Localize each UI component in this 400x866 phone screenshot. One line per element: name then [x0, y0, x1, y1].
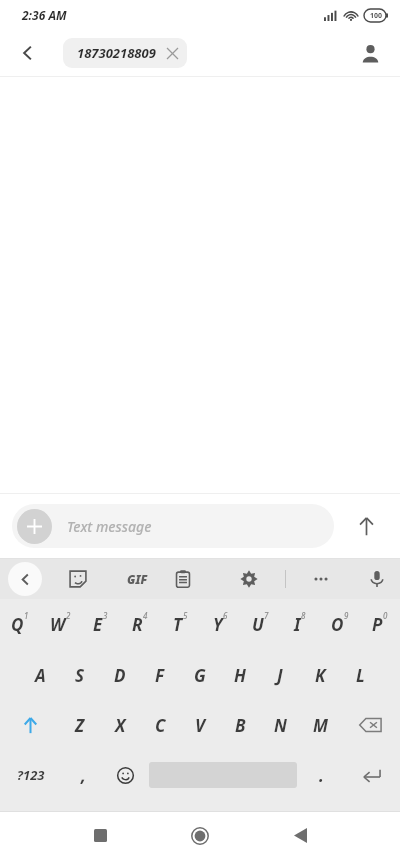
- button[interactable]: X: [100, 700, 140, 750]
- button[interactable]: Symbols: [0, 750, 62, 800]
- staticText: 6: [223, 610, 228, 621]
- button[interactable]: Send: [344, 504, 388, 548]
- staticText: O: [331, 613, 344, 636]
- staticText: 7: [264, 610, 269, 621]
- staticText: D: [114, 664, 126, 687]
- button[interactable]: Recent apps: [50, 812, 150, 859]
- button[interactable]: F: [140, 650, 180, 700]
- button[interactable]: J: [260, 650, 300, 700]
- staticText: B: [235, 714, 246, 737]
- staticText: Q: [11, 613, 24, 636]
- button[interactable]: C: [140, 700, 180, 750]
- staticText: M: [313, 714, 328, 737]
- button[interactable]: D: [100, 650, 140, 700]
- button[interactable]: M: [300, 700, 340, 750]
- staticText: 2: [66, 610, 71, 621]
- button[interactable]: Z: [60, 700, 100, 750]
- button[interactable]: ,: [62, 750, 104, 800]
- staticText: 2:36 AM: [22, 7, 67, 23]
- staticText: 0: [383, 610, 388, 621]
- button[interactable]: N: [260, 700, 300, 750]
- button[interactable]: G: [180, 650, 220, 700]
- button[interactable]: Home: [150, 812, 250, 859]
- button[interactable]: Y: [200, 599, 240, 650]
- button[interactable]: Back: [8, 33, 48, 73]
- staticText: 3: [103, 610, 108, 621]
- button[interactable]: Attach: [12, 504, 334, 548]
- button[interactable]: Settings: [229, 559, 269, 599]
- staticText: GIF: [127, 571, 148, 587]
- staticText: 18730218809: [77, 44, 156, 62]
- button[interactable]: More options: [301, 559, 341, 599]
- staticText: C: [155, 714, 166, 737]
- staticText: 8: [301, 610, 306, 621]
- button[interactable]: U: [240, 599, 280, 650]
- button[interactable]: Back: [250, 812, 350, 859]
- button[interactable]: H: [220, 650, 260, 700]
- button[interactable]: Voice input: [357, 559, 397, 599]
- staticText: U: [252, 613, 264, 636]
- button[interactable]: .: [300, 750, 342, 800]
- staticText: 4: [143, 610, 148, 621]
- staticText: R: [132, 613, 143, 636]
- button[interactable]: Close toolbar: [8, 562, 42, 596]
- button[interactable]: W: [40, 599, 80, 650]
- staticText: X: [115, 714, 126, 737]
- staticText: .: [319, 764, 324, 787]
- staticText: P: [372, 613, 383, 636]
- staticText: Text message: [67, 517, 152, 536]
- button[interactable]: S: [60, 650, 100, 700]
- button[interactable]: Shift: [0, 700, 60, 750]
- staticText: F: [155, 664, 165, 687]
- button[interactable]: Backspace: [340, 700, 400, 750]
- staticText: K: [315, 664, 326, 687]
- button[interactable]: Clipboard: [163, 559, 203, 599]
- staticText: L: [356, 664, 365, 687]
- staticText: 1: [24, 610, 29, 621]
- staticText: 100: [370, 11, 383, 21]
- button[interactable]: Stickers: [58, 559, 98, 599]
- button[interactable]: Attach: [17, 509, 52, 544]
- staticText: J: [277, 664, 283, 687]
- button[interactable]: A: [20, 650, 60, 700]
- button[interactable]: O: [320, 599, 360, 650]
- staticText: V: [195, 714, 206, 737]
- staticText: H: [234, 664, 246, 687]
- staticText: ?123: [17, 766, 45, 784]
- staticText: I: [294, 613, 301, 636]
- button[interactable]: P: [360, 599, 400, 650]
- button[interactable]: B: [220, 700, 260, 750]
- staticText: 5: [183, 610, 188, 621]
- button[interactable]: I: [280, 599, 320, 650]
- button[interactable]: Enter: [342, 750, 400, 800]
- button[interactable]: Q: [0, 599, 40, 650]
- button[interactable]: 18730218809: [63, 38, 187, 68]
- staticText: W: [50, 613, 66, 636]
- staticText: 9: [344, 610, 349, 621]
- staticText: A: [35, 664, 46, 687]
- staticText: T: [173, 613, 183, 636]
- button[interactable]: V: [180, 700, 220, 750]
- button[interactable]: Contact details: [350, 33, 390, 73]
- staticText: N: [274, 714, 287, 737]
- staticText: Y: [213, 613, 223, 636]
- staticText: ,: [81, 764, 86, 787]
- button[interactable]: GIF: [117, 559, 157, 599]
- staticText: S: [75, 664, 85, 687]
- staticText: G: [194, 664, 206, 687]
- button[interactable]: R: [120, 599, 160, 650]
- staticText: Z: [75, 714, 85, 737]
- button[interactable]: E: [80, 599, 120, 650]
- staticText: E: [93, 613, 103, 636]
- button[interactable]: T: [160, 599, 200, 650]
- button[interactable]: L: [340, 650, 380, 700]
- button[interactable]: K: [300, 650, 340, 700]
- button[interactable]: Emoji: [104, 750, 146, 800]
